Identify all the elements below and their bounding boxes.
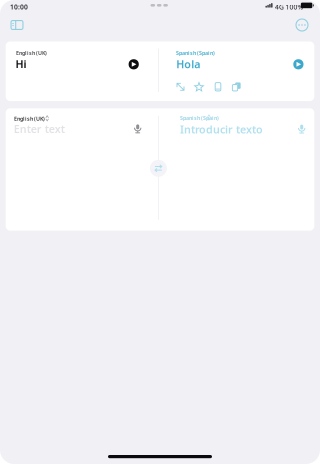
button[interactable]: More options bbox=[292, 16, 312, 34]
button[interactable]: Full screen bbox=[173, 80, 188, 94]
button[interactable]: Dictate English bbox=[128, 119, 148, 139]
button[interactable]: Swap languages bbox=[150, 160, 167, 177]
staticText: Spanish (Spain) bbox=[180, 114, 219, 122]
button[interactable]: Add to favourites bbox=[191, 80, 206, 94]
button[interactable]: Dictionary bbox=[210, 80, 225, 94]
staticText: Hola bbox=[176, 57, 200, 71]
staticText: English (UK) bbox=[16, 49, 47, 57]
staticText: 100% bbox=[285, 3, 303, 11]
staticText: 4G bbox=[275, 3, 284, 11]
button[interactable]: Show sidebar bbox=[6, 16, 28, 34]
staticText: Hi bbox=[16, 57, 27, 71]
button[interactable]: Enter text bbox=[14, 122, 124, 136]
staticText: Enter text bbox=[14, 122, 65, 136]
staticText: 10:00 bbox=[10, 2, 28, 11]
button[interactable]: Dictate Spanish bbox=[292, 119, 312, 139]
button[interactable]: Play English bbox=[123, 53, 145, 75]
button[interactable]: Copy bbox=[229, 80, 244, 94]
staticText: English (UK) bbox=[14, 115, 45, 122]
staticText: Spanish (Spain) bbox=[176, 49, 215, 57]
button[interactable]: Introducir texto bbox=[180, 122, 290, 136]
staticText: Introducir texto bbox=[180, 122, 263, 136]
button[interactable]: Play Spanish bbox=[287, 53, 309, 75]
